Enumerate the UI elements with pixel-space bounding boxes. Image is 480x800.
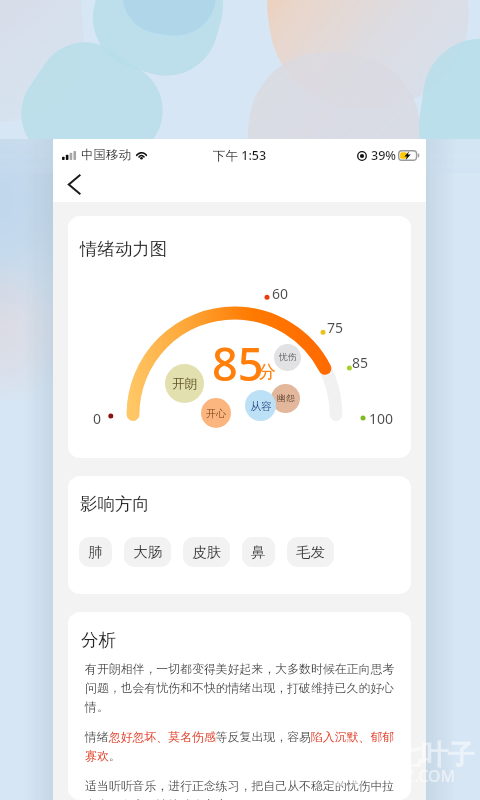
staticText: 大肠 — [133, 543, 162, 561]
staticText: 从容 — [250, 399, 272, 413]
staticText: 幽怨 — [277, 393, 295, 404]
staticText: 85 — [352, 353, 369, 372]
staticText: 分 — [258, 361, 276, 384]
staticText: 下午 1:53 — [213, 147, 267, 164]
button[interactable]: 皮肤 — [183, 537, 230, 567]
staticText: 适当听听音乐，进行正念练习，把自己从不稳定的忧伤中拉出来，向上的情绪才会占上风。 — [85, 779, 397, 800]
button[interactable]: 从容 — [245, 390, 276, 421]
staticText: 7YZ.COM — [387, 765, 456, 787]
staticText: 分析 — [81, 629, 116, 651]
staticText: 忧伤 — [279, 352, 297, 363]
staticText: 85 — [212, 333, 264, 394]
staticText: 0 — [93, 409, 102, 428]
button[interactable]: 开朗 — [165, 364, 204, 403]
staticText: 七叶子 — [394, 738, 475, 772]
staticText: 皮肤 — [192, 543, 221, 561]
staticText: 鼻 — [251, 543, 266, 561]
staticText: 开心 — [206, 407, 226, 420]
staticText: 肺 — [88, 543, 103, 561]
staticText: 影响方向 — [80, 493, 150, 515]
button[interactable]: 大肠 — [124, 537, 171, 567]
staticText: 39% — [371, 147, 396, 164]
button[interactable]: 幽怨 — [271, 384, 300, 413]
staticText: 有开朗相伴，一切都变得美好起来，大多数时候在正向思考问题，也会有忧伤和不快的情绪… — [85, 662, 397, 714]
staticText: 中国移动 — [81, 147, 131, 163]
button[interactable]: Back — [56, 167, 92, 202]
button[interactable]: 毛发 — [287, 537, 334, 567]
button[interactable]: 开心 — [201, 398, 231, 428]
staticText: 开朗 — [172, 376, 197, 392]
button[interactable]: 肺 — [79, 537, 112, 567]
staticText: 60 — [272, 284, 289, 303]
staticText: 情绪动力图 — [80, 238, 168, 260]
staticText: 情绪忽好忽坏、莫名伤感等反复出现，容易陷入沉默、郁郁寡欢。 — [85, 730, 397, 763]
staticText: 毛发 — [296, 543, 325, 561]
staticText: 75 — [327, 318, 344, 337]
staticText: 100 — [369, 409, 394, 428]
button[interactable]: 忧伤 — [274, 344, 301, 371]
button[interactable]: 鼻 — [242, 537, 275, 567]
